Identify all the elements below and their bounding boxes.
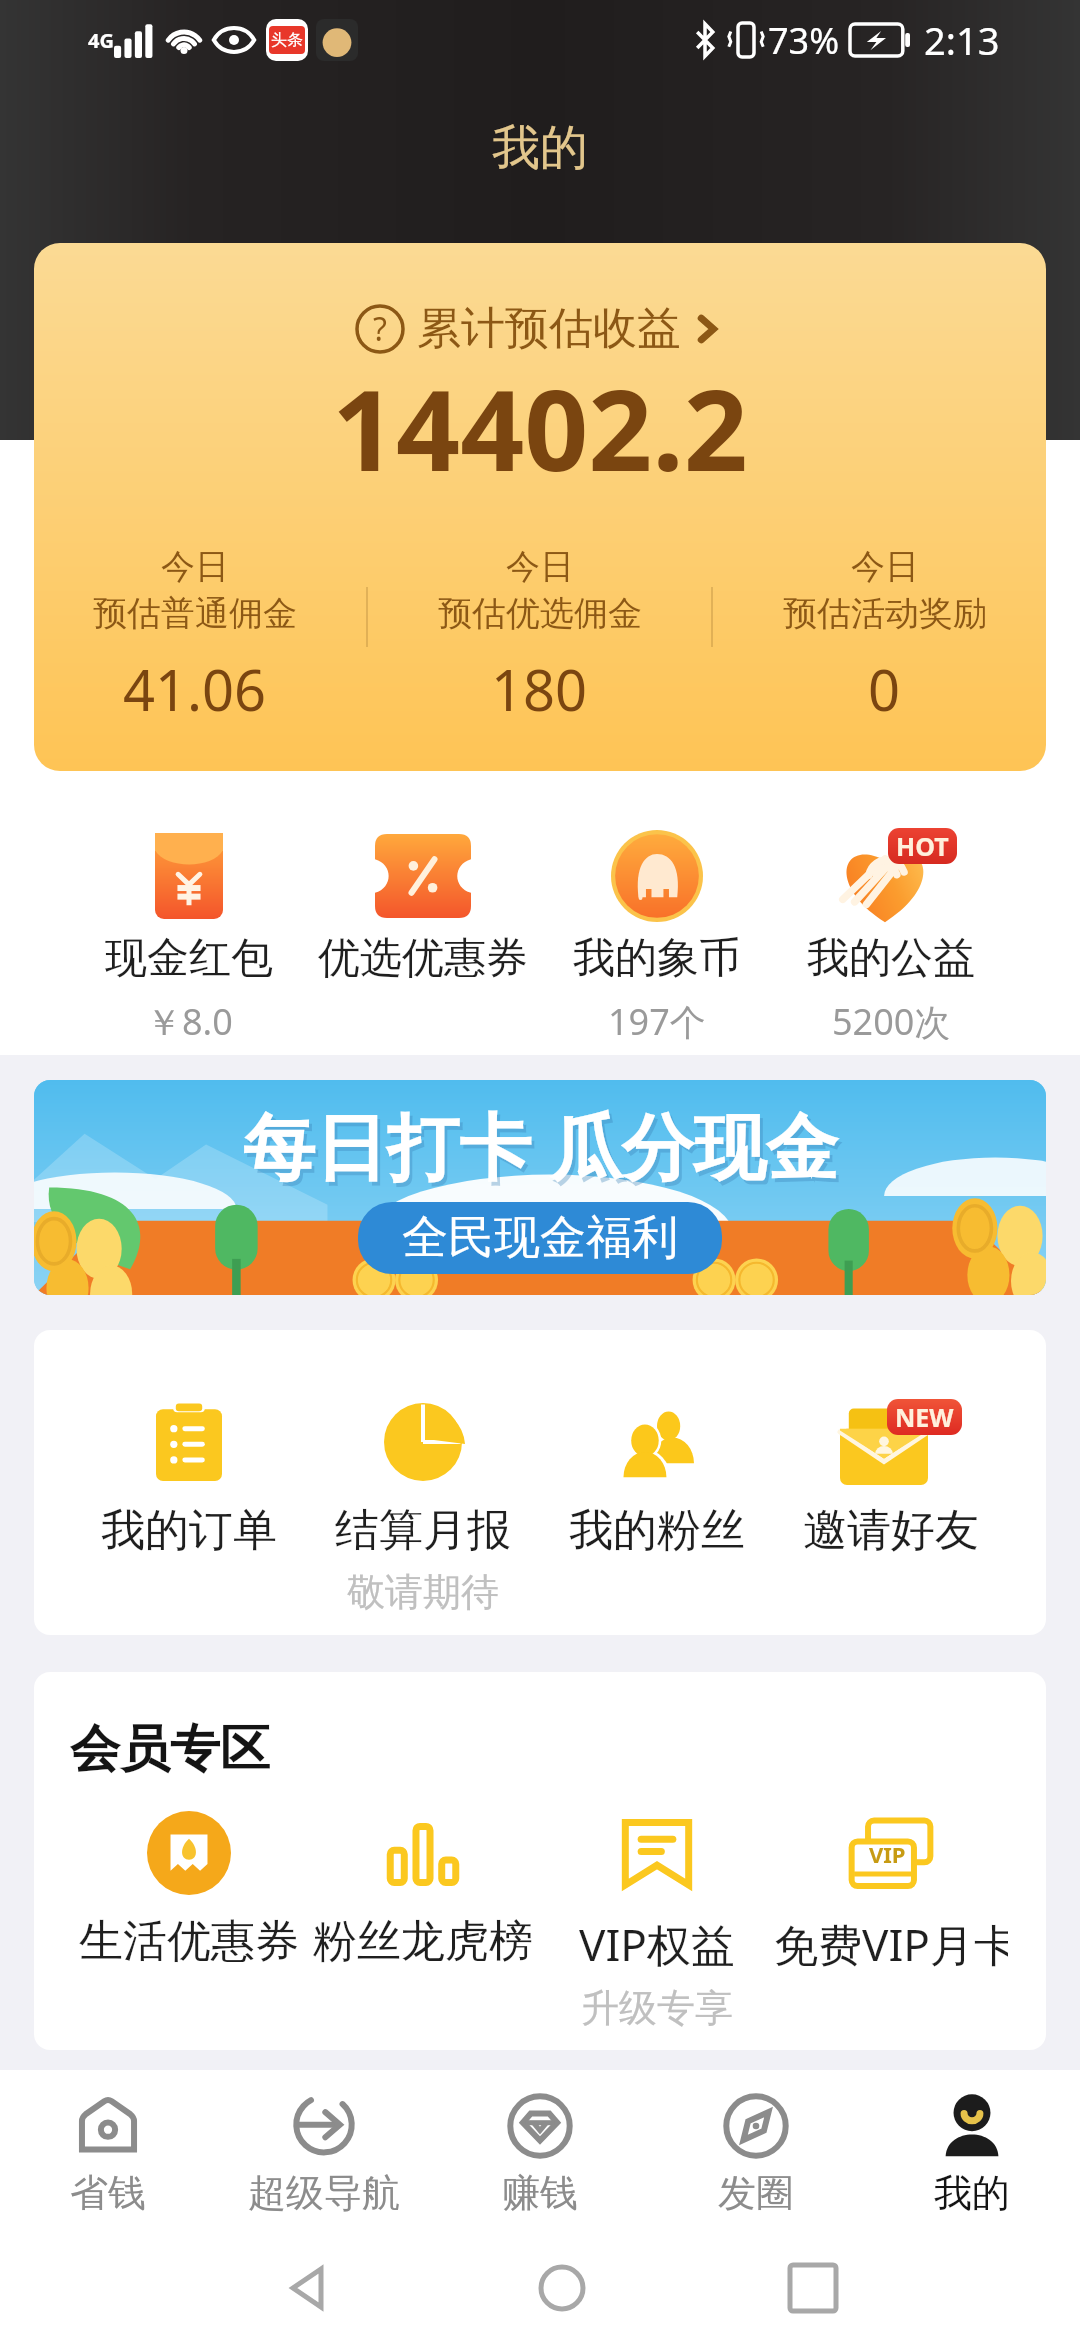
staticText: 180 <box>491 651 588 727</box>
other: 我的 <box>939 2093 1005 2159</box>
staticText: 我的 <box>934 2169 1010 2217</box>
staticText: 每日打卡 瓜分现金 <box>243 1096 838 1194</box>
staticText: 邀请好友 <box>803 1503 979 1558</box>
button[interactable]: 现金红包 <box>72 830 306 1040</box>
staticText: 我的象币 <box>573 932 741 985</box>
button[interactable]: 省钱 <box>0 2070 216 2235</box>
staticText: 我的粉丝 <box>569 1503 745 1558</box>
staticText: 14402.2 <box>332 351 748 504</box>
staticText: 头条 <box>271 30 303 50</box>
staticText: 预估普通佣金 <box>93 592 297 635</box>
staticText: 每日打卡 瓜分现金 <box>246 1100 841 1198</box>
staticText: 今日 <box>506 545 574 588</box>
button[interactable]: 生活优惠券 <box>72 1810 306 1979</box>
staticText: 优选优惠券 <box>318 932 528 985</box>
staticText: 免费VIP月卡 <box>774 1914 1008 1974</box>
button[interactable]: VIP权益 <box>540 1810 774 2032</box>
staticText: 赚钱 <box>502 2169 578 2217</box>
button[interactable]: 超级导航 <box>216 2070 432 2235</box>
staticText: 41.06 <box>123 651 267 727</box>
staticText: 省钱 <box>70 2169 146 2217</box>
staticText: ? <box>373 307 387 351</box>
staticText: 全民现金福利 <box>402 1209 678 1267</box>
staticText: ￥8.0 <box>146 997 233 1040</box>
staticText: 会员专区 <box>70 1718 270 1781</box>
staticText: 5200次 <box>832 997 951 1040</box>
other: 发圈 <box>723 2093 789 2159</box>
other: 赚钱 <box>507 2093 573 2159</box>
button[interactable]: NEW <box>774 1399 1008 1568</box>
other: 省钱 <box>77 2095 139 2157</box>
button[interactable]: Home <box>517 2243 607 2333</box>
staticText: VIP权益 <box>579 1914 735 1974</box>
button[interactable]: 发圈 <box>648 2070 864 2235</box>
staticText: 我的公益 <box>807 932 975 985</box>
button[interactable]: Recents <box>768 2243 858 2333</box>
staticText: 粉丝龙虎榜 <box>313 1914 533 1969</box>
button[interactable]: 我的粉丝 <box>540 1399 774 1568</box>
staticText: VIP <box>869 1839 906 1869</box>
button[interactable]: ? <box>34 243 1046 771</box>
staticText: 今日 <box>851 545 919 588</box>
button[interactable]: VIP <box>774 1810 1008 1984</box>
button[interactable]: HOT <box>774 830 1008 1040</box>
staticText: HOT <box>896 829 949 863</box>
staticText: 我的 <box>492 118 588 178</box>
staticText: NEW <box>895 1400 954 1434</box>
button[interactable]: 每日打卡 瓜分现金 <box>34 1080 1046 1295</box>
button[interactable]: 我的订单 <box>72 1399 306 1568</box>
staticText: 73% <box>768 16 840 65</box>
staticText: 2:13 <box>924 14 1000 66</box>
button[interactable]: 粉丝龙虎榜 <box>306 1810 540 1979</box>
button[interactable]: 我的 <box>864 2070 1080 2235</box>
button[interactable]: 结算月报 <box>306 1399 540 1616</box>
staticText: 累计预估收益 <box>417 301 681 356</box>
other: 超级导航 <box>291 2093 357 2159</box>
staticText: 升级专享 <box>581 1984 733 2032</box>
staticText: 发圈 <box>718 2169 794 2217</box>
staticText: 敬请期待 <box>347 1568 499 1616</box>
button[interactable]: Back <box>265 2243 355 2333</box>
button[interactable]: 赚钱 <box>432 2070 648 2235</box>
staticText: 0 <box>868 651 901 727</box>
staticText: 197个 <box>608 997 706 1040</box>
staticText: 生活优惠券 <box>79 1914 299 1969</box>
staticText: 现金红包 <box>105 932 273 985</box>
button[interactable]: 我的象币 <box>540 830 774 1040</box>
staticText: 今日 <box>161 545 229 588</box>
staticText: 超级导航 <box>248 2169 400 2217</box>
staticText: 预估活动奖励 <box>783 592 987 635</box>
staticText: 预估优选佣金 <box>438 592 642 635</box>
staticText: 结算月报 <box>335 1503 511 1558</box>
staticText: 4G <box>88 27 114 54</box>
button[interactable]: 优选优惠券 <box>306 830 540 1040</box>
staticText: 我的订单 <box>101 1503 277 1558</box>
